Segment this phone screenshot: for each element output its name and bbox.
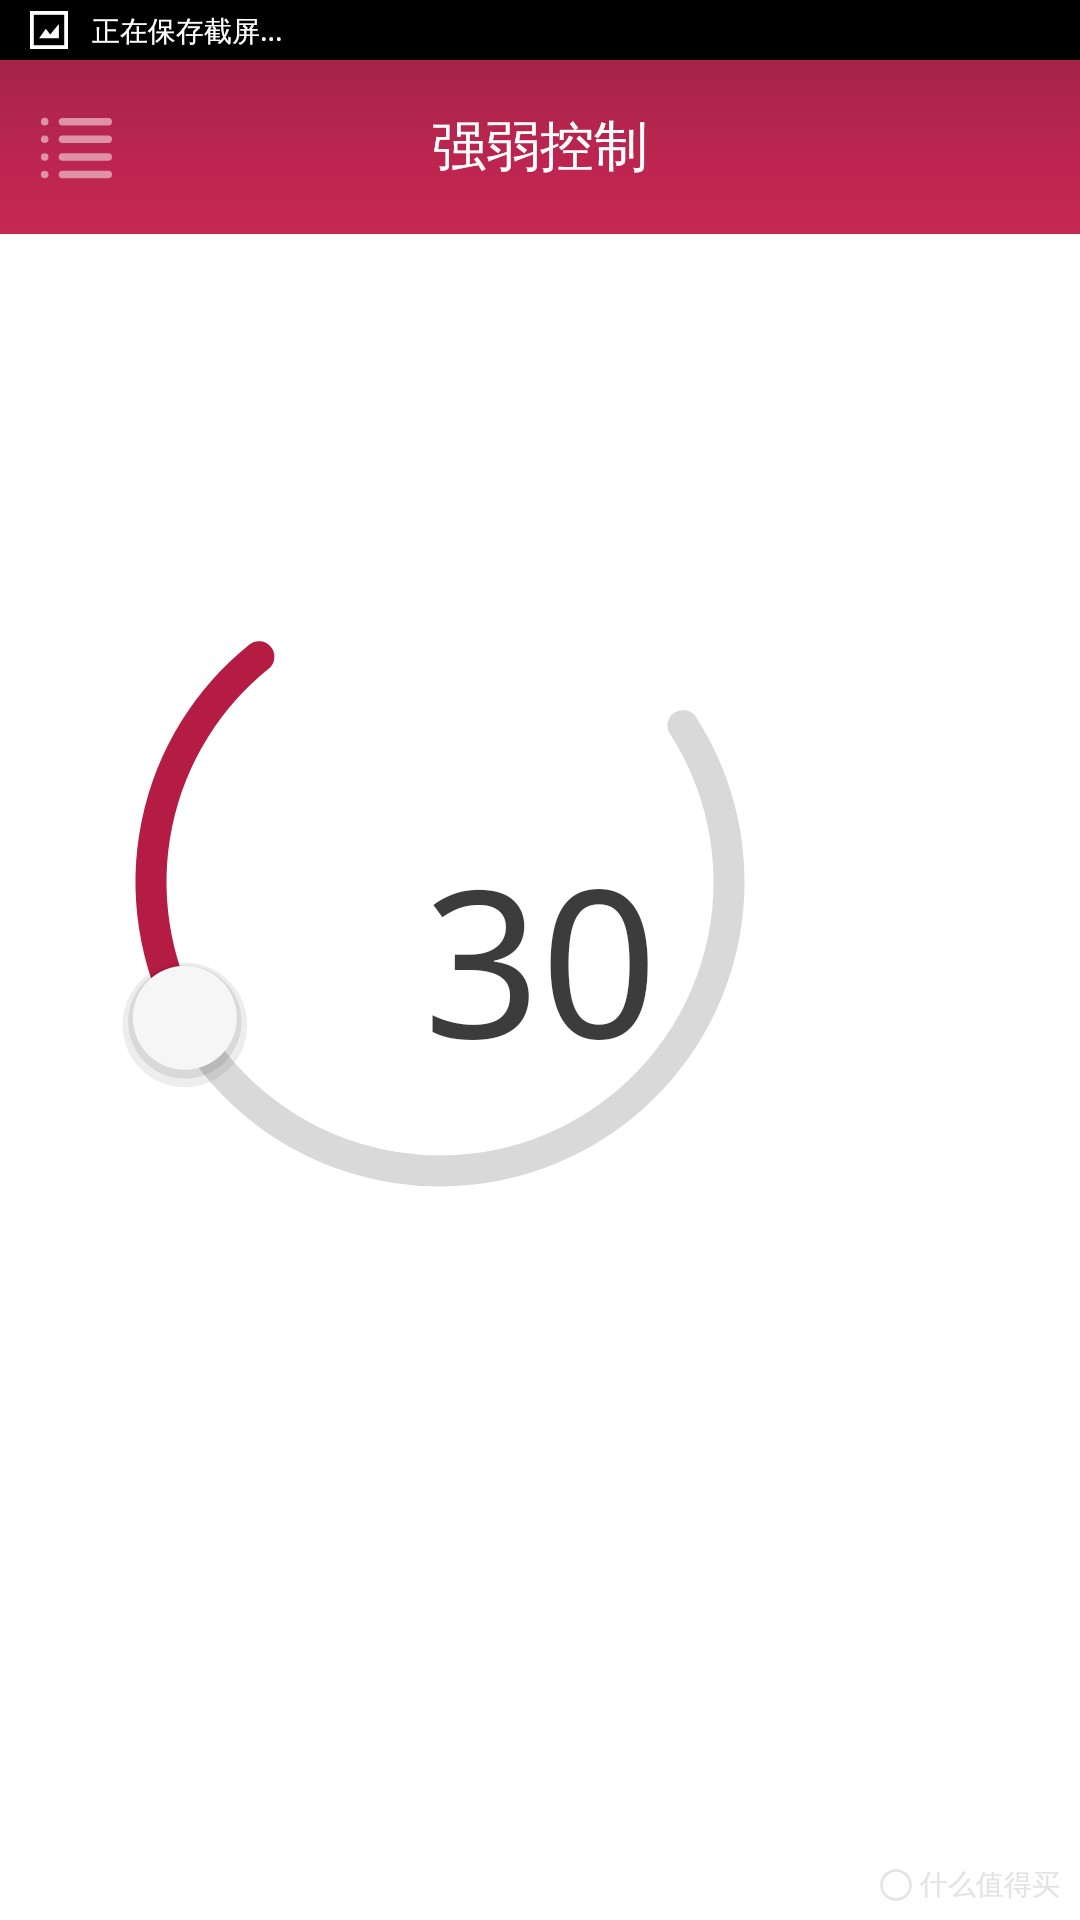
- button[interactable]: 菜单: [16, 87, 136, 207]
- staticText: 30: [423, 819, 658, 1098]
- staticText: 什么值得买: [920, 1867, 1060, 1902]
- staticText: 正在保存截屏...: [92, 11, 283, 49]
- staticText: 强弱控制: [432, 113, 648, 181]
- button[interactable]: 强度控制 30: [0, 234, 1080, 1920]
